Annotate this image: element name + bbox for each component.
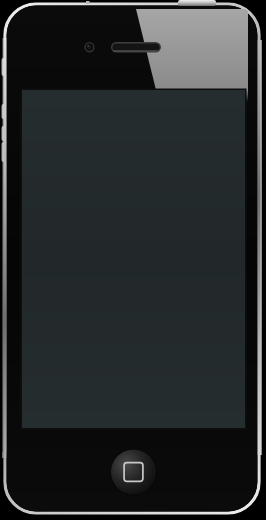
button[interactable]: Phone screen [0,0,266,520]
